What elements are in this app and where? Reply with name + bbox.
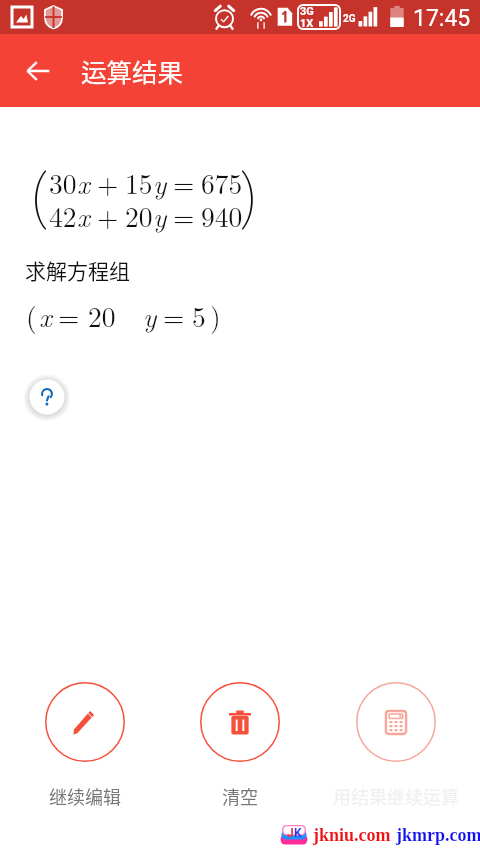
staticText: 1X bbox=[300, 17, 314, 30]
staticText: y bbox=[143, 296, 157, 335]
staticText: + bbox=[97, 196, 119, 235]
staticText: y bbox=[153, 163, 167, 202]
staticText: ) bbox=[210, 296, 221, 335]
staticText: J bbox=[287, 826, 294, 840]
staticText: 继续编辑 bbox=[15, 783, 155, 809]
staticText: x bbox=[77, 196, 90, 235]
button[interactable]: Help bbox=[25, 375, 69, 419]
staticText: 15 bbox=[125, 163, 153, 202]
staticText: 42 bbox=[49, 196, 77, 235]
staticText: 求解方程组 bbox=[25, 255, 130, 285]
staticText: jkmrp.com bbox=[396, 825, 480, 845]
staticText: ( bbox=[26, 296, 37, 335]
button[interactable]: Clear bbox=[170, 682, 310, 762]
staticText: = bbox=[173, 163, 195, 202]
staticText: 2G bbox=[343, 13, 356, 25]
staticText: = bbox=[163, 296, 185, 335]
staticText: + bbox=[97, 163, 119, 202]
staticText: x bbox=[77, 163, 90, 202]
staticText: = bbox=[173, 196, 195, 235]
staticText: 运算结果 bbox=[81, 52, 184, 89]
staticText: 清空 bbox=[170, 783, 310, 809]
staticText: K bbox=[294, 826, 302, 840]
button[interactable]: Back bbox=[15, 48, 61, 94]
staticText: = bbox=[58, 296, 80, 335]
button[interactable]: Use result bbox=[326, 682, 466, 762]
button[interactable]: Continue editing bbox=[15, 682, 155, 762]
staticText: 3G bbox=[300, 5, 314, 18]
staticText: 17:45 bbox=[413, 5, 471, 32]
staticText: jkniu.com bbox=[313, 825, 391, 845]
staticText: x bbox=[39, 296, 52, 335]
staticText: 20 bbox=[88, 296, 116, 335]
staticText: 940 bbox=[201, 196, 243, 235]
staticText: y bbox=[153, 196, 167, 235]
staticText: 用结果继续运算 bbox=[326, 783, 466, 809]
staticText: 20 bbox=[125, 196, 153, 235]
staticText: 5 bbox=[192, 296, 206, 335]
staticText: 675 bbox=[201, 163, 243, 202]
staticText: 30 bbox=[49, 163, 77, 202]
